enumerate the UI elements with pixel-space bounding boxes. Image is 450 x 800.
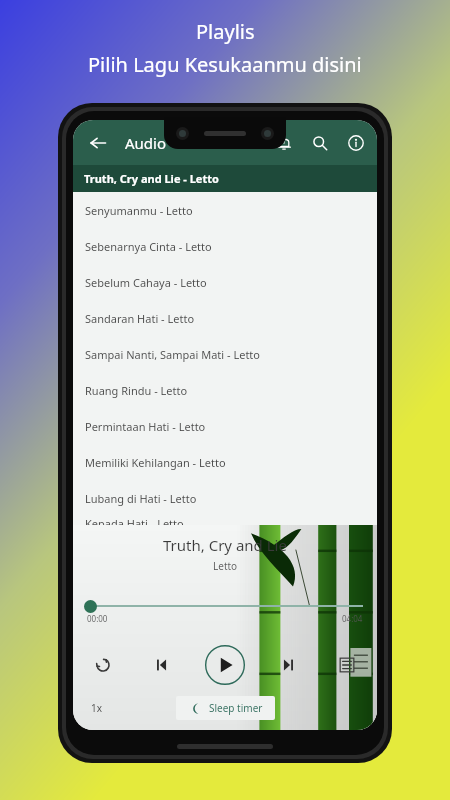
staticText: Sleep timer [209, 701, 263, 715]
staticText: Truth, Cry and Lie [163, 535, 287, 555]
staticText: Pilih Lagu Kesukaanmu disini [88, 51, 362, 78]
button[interactable]: Sebelum Cahaya - Letto [73, 264, 377, 300]
button[interactable]: Play [203, 643, 247, 687]
staticText: Sampai Nanti, Sampai Mati - Letto [85, 347, 260, 362]
button[interactable]: Repeat [87, 649, 119, 681]
staticText: Lubang di Hati - Letto [85, 491, 197, 506]
staticText: Memiliki Kehilangan - Letto [85, 455, 226, 470]
button[interactable]: 1x [87, 697, 107, 719]
button[interactable]: Back [81, 126, 115, 160]
button[interactable]: Previous [145, 649, 177, 681]
button[interactable]: Ruang Rindu - Letto [73, 372, 377, 408]
staticText: Playlis [196, 18, 255, 45]
button[interactable]: Kepada Hati - Letto [73, 516, 377, 525]
staticText: 04:04 [342, 613, 363, 624]
button[interactable]: Sebenarnya Cinta - Letto [73, 228, 377, 264]
staticText: 00:00 [87, 613, 108, 624]
button[interactable]: Memiliki Kehilangan - Letto [73, 444, 377, 480]
button[interactable]: Sampai Nanti, Sampai Mati - Letto [73, 336, 377, 372]
button[interactable]: Sandaran Hati - Letto [73, 300, 377, 336]
button[interactable]: Next [273, 649, 305, 681]
staticText: Sebelum Cahaya - Letto [85, 275, 207, 290]
staticText: Sandaran Hati - Letto [85, 311, 195, 326]
button[interactable]: Lubang di Hati - Letto [73, 480, 377, 516]
button[interactable]: Alarm [269, 128, 299, 158]
staticText: Letto [213, 559, 238, 573]
staticText: Truth, Cry and Lie - Letto [84, 171, 219, 186]
staticText: Ruang Rindu - Letto [85, 383, 188, 398]
button[interactable]: Truth, Cry and Lie - Letto [73, 165, 377, 192]
staticText: Senyumanmu - Letto [85, 203, 193, 218]
button[interactable]: Search [305, 128, 335, 158]
staticText: Permintaan Hati - Letto [85, 419, 206, 434]
button[interactable]: Permintaan Hati - Letto [73, 408, 377, 444]
button[interactable]: Sleep timer [176, 696, 275, 720]
button[interactable]: Playlist [331, 649, 363, 681]
button[interactable]: Seek bar [73, 599, 377, 613]
staticText: Audio [125, 133, 167, 153]
button[interactable]: Senyumanmu - Letto [73, 192, 377, 228]
button[interactable]: Info [341, 128, 371, 158]
staticText: 1x [91, 701, 103, 715]
staticText: Kepada Hati - Letto [85, 516, 184, 525]
staticText: Sebenarnya Cinta - Letto [85, 239, 212, 254]
